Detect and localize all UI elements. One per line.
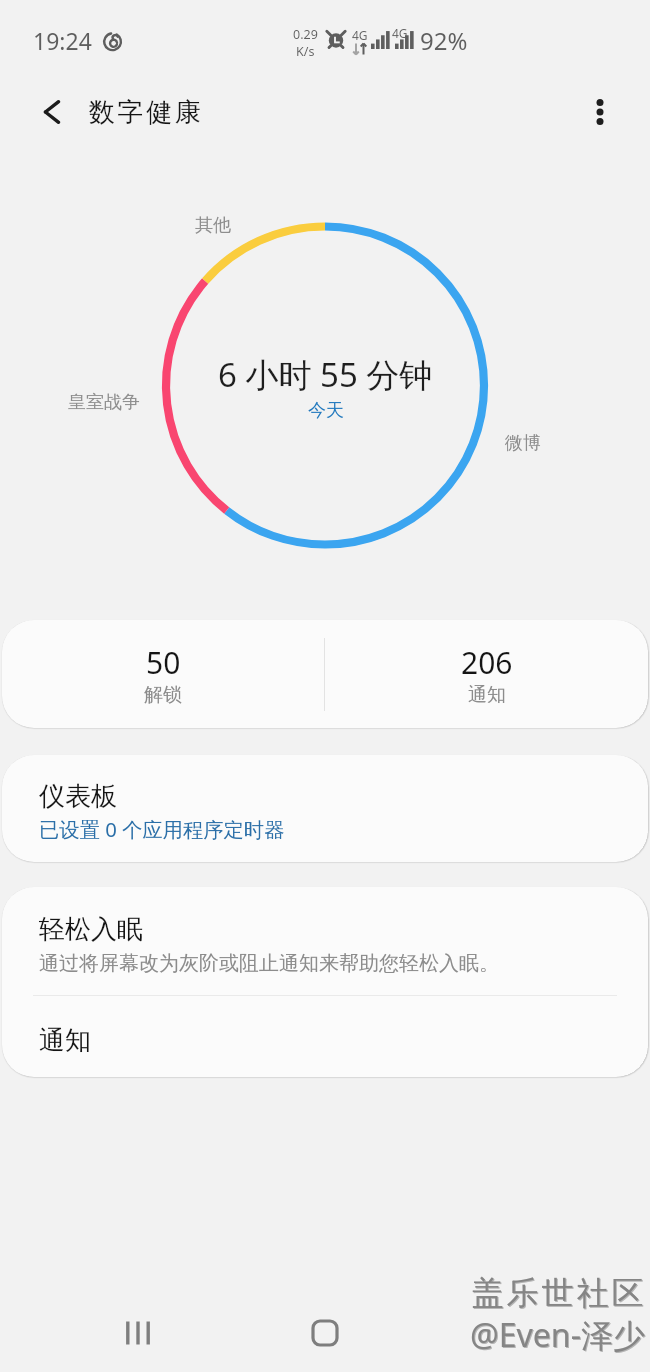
staticText: 其他 bbox=[195, 214, 231, 237]
staticText: 50 bbox=[146, 642, 181, 683]
button[interactable]: 50 bbox=[2, 620, 324, 728]
staticText: 仪表板 bbox=[39, 780, 117, 813]
staticText: 92% bbox=[420, 24, 468, 57]
staticText: 通过将屏幕改为灰阶或阻止通知来帮助您轻松入眠。 bbox=[39, 951, 499, 976]
staticText: @Even-泽少 bbox=[471, 1314, 646, 1358]
staticText: 皇室战争 bbox=[68, 391, 140, 414]
button[interactable]: Back bbox=[486, 1307, 538, 1359]
staticText: 0.29 bbox=[293, 26, 318, 43]
button[interactable]: 206 bbox=[325, 620, 648, 728]
staticText: 解锁 bbox=[144, 683, 182, 707]
staticText: 轻松入眠 bbox=[39, 913, 143, 946]
staticText: 206 bbox=[461, 642, 513, 683]
staticText: 已设置 0 个应用程序定时器 bbox=[39, 815, 285, 843]
staticText: 微博 bbox=[505, 432, 541, 455]
button[interactable]: 通知 bbox=[2, 996, 648, 1073]
staticText: 数字健康 bbox=[89, 96, 204, 129]
button[interactable]: More options bbox=[580, 93, 628, 141]
staticText: 4G bbox=[392, 25, 408, 41]
button[interactable]: Back bbox=[22, 90, 76, 144]
button[interactable]: Home bbox=[299, 1307, 351, 1359]
button[interactable]: 仪表板 bbox=[2, 755, 648, 862]
staticText: 盖乐世社区 bbox=[470, 1273, 645, 1313]
staticText: 通知 bbox=[468, 683, 506, 707]
button[interactable]: 轻松入眠 bbox=[2, 887, 648, 995]
button[interactable]: Recents bbox=[112, 1307, 164, 1359]
staticText: 通知 bbox=[39, 1024, 91, 1057]
staticText: 盖乐世社区 bbox=[471, 1274, 646, 1314]
staticText: 6 小时 55 分钟 bbox=[218, 352, 433, 397]
staticText: K/s bbox=[296, 43, 315, 60]
staticText: @Even-泽少 bbox=[470, 1313, 645, 1357]
staticText: 19:24 bbox=[33, 25, 92, 56]
staticText: 今天 bbox=[308, 399, 344, 422]
staticText: 4G bbox=[352, 27, 368, 43]
